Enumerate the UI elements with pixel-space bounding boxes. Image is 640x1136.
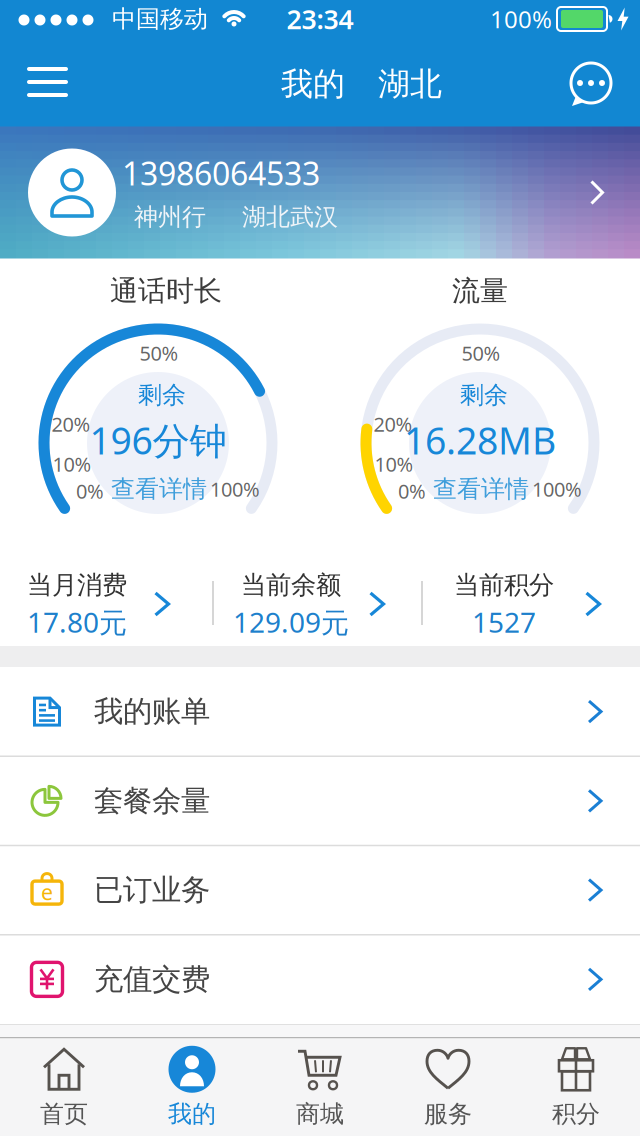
staticText: 100% — [210, 476, 260, 502]
staticText: 当前积分 — [454, 569, 554, 600]
staticText: 50% — [461, 340, 500, 366]
button[interactable]: Account — [0, 127, 640, 258]
staticText: 17.80元 — [27, 603, 127, 641]
staticText: 129.09元 — [233, 603, 349, 641]
staticText: 首页 — [40, 1099, 88, 1129]
button[interactable]: 当月消费 — [0, 556, 172, 646]
staticText: 13986064533 — [122, 152, 320, 194]
button[interactable]: 首页 — [0, 1039, 128, 1134]
button[interactable]: e — [0, 845, 640, 935]
button[interactable]: Messages — [566, 60, 618, 108]
button[interactable]: 积分 — [512, 1039, 640, 1134]
staticText: 已订业务 — [94, 872, 210, 908]
button[interactable]: 商城 — [256, 1039, 384, 1134]
staticText: 流量 — [452, 274, 508, 308]
button[interactable]: 服务 — [384, 1039, 512, 1134]
staticText: 剩余 — [460, 380, 508, 410]
button[interactable]: 查看详情 — [111, 474, 207, 504]
staticText: 196分钟 — [89, 415, 226, 465]
staticText: 10% — [52, 451, 91, 477]
staticText: 我的 — [281, 64, 345, 104]
staticText: 23:34 — [286, 1, 353, 37]
staticText: 服务 — [424, 1099, 472, 1129]
staticText: 查看详情 — [433, 474, 529, 504]
staticText: 50% — [139, 340, 178, 366]
staticText: 我的账单 — [94, 694, 210, 730]
staticText: e — [41, 878, 53, 906]
staticText: 我的 — [168, 1099, 216, 1129]
staticText: 0% — [76, 478, 104, 504]
staticText: 积分 — [552, 1099, 600, 1129]
staticText: 0% — [398, 478, 426, 504]
staticText: 当前余额 — [241, 569, 341, 600]
staticText: 1527 — [472, 603, 536, 641]
button[interactable]: 我的 — [128, 1039, 256, 1134]
staticText: 中国移动 — [112, 4, 208, 34]
staticText: 商城 — [296, 1099, 344, 1129]
staticText: 湖北 — [378, 64, 442, 104]
staticText: 神州行 — [134, 202, 206, 232]
staticText: 16.28MB — [404, 415, 556, 465]
staticText: 10% — [374, 451, 413, 477]
staticText: 套餐余量 — [94, 783, 210, 819]
staticText: 100% — [532, 476, 582, 502]
staticText: 通话时长 — [110, 274, 222, 308]
button[interactable]: 当前积分 — [409, 556, 599, 646]
button[interactable]: 充值交费 — [0, 935, 640, 1024]
button[interactable]: 我的账单 — [0, 667, 640, 756]
staticText: 20% — [373, 411, 412, 437]
staticText: 查看详情 — [111, 474, 207, 504]
staticText: 100% — [490, 3, 552, 35]
staticText: 剩余 — [138, 380, 186, 410]
button[interactable]: 当前余额 — [196, 556, 386, 646]
button[interactable]: 查看详情 — [433, 474, 529, 504]
staticText: 湖北武汉 — [242, 202, 338, 232]
staticText: 充值交费 — [94, 961, 210, 997]
button[interactable]: Menu — [23, 64, 72, 100]
staticText: 当月消费 — [27, 569, 127, 600]
staticText: 20% — [51, 411, 90, 437]
button[interactable]: 套餐余量 — [0, 756, 640, 845]
